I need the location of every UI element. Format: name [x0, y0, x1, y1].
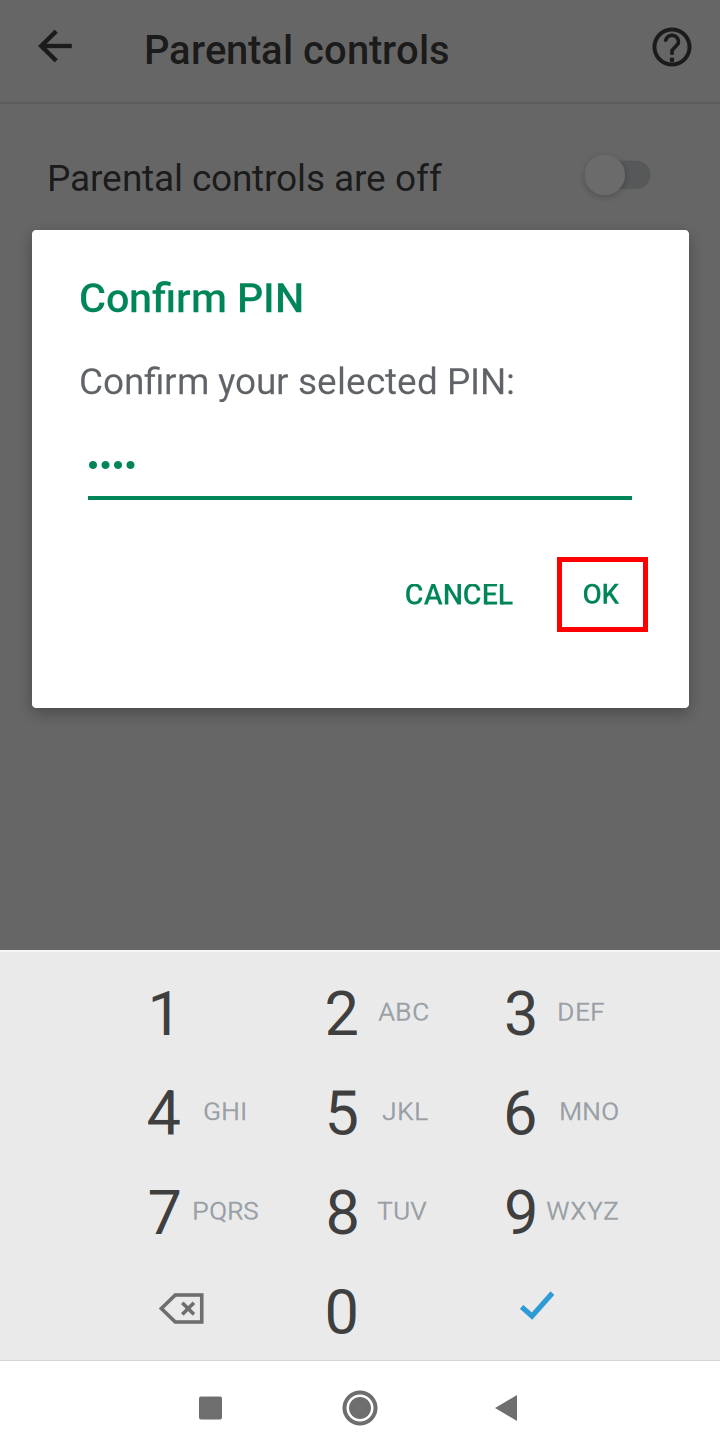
- button[interactable]: 2: [232, 978, 452, 1077]
- staticText: WXYZ: [546, 1195, 619, 1226]
- staticText: PQRS: [192, 1195, 259, 1226]
- button[interactable]: Delete: [109, 1259, 329, 1358]
- button[interactable]: Back: [8, 0, 104, 94]
- button[interactable]: 4: [54, 1077, 274, 1176]
- staticText: Parental controls: [144, 27, 450, 74]
- staticText: Confirm PIN: [79, 274, 304, 322]
- staticText: 7: [147, 1177, 181, 1249]
- button[interactable]: OK: [557, 557, 648, 632]
- staticText: 5: [324, 1077, 358, 1149]
- staticText: GHI: [203, 1095, 247, 1127]
- button[interactable]: 7: [55, 1177, 275, 1276]
- button[interactable]: Recent apps: [140, 1360, 280, 1456]
- staticText: 6: [503, 1077, 537, 1149]
- button[interactable]: 6: [411, 1077, 631, 1176]
- button[interactable]: 9: [411, 1177, 631, 1276]
- staticText: 0: [324, 1276, 358, 1348]
- button[interactable]: Confirm: [427, 1259, 647, 1358]
- button[interactable]: Help: [624, 0, 720, 95]
- staticText: 1: [147, 978, 181, 1050]
- button[interactable]: Back: [436, 1360, 576, 1456]
- button[interactable]: CANCEL: [374, 558, 543, 632]
- button[interactable]: 5: [233, 1077, 453, 1176]
- staticText: TUV: [377, 1195, 427, 1226]
- staticText: 9: [504, 1177, 538, 1249]
- staticText: ABC: [378, 996, 429, 1027]
- button[interactable]: 1: [51, 978, 271, 1077]
- staticText: JKL: [382, 1095, 428, 1127]
- button[interactable]: 8: [233, 1177, 453, 1276]
- button[interactable]: Parental controls switch, off: [0, 104, 720, 230]
- button[interactable]: 0: [232, 1276, 452, 1375]
- staticText: DEF: [557, 996, 605, 1027]
- staticText: CANCEL: [405, 578, 513, 612]
- staticText: Confirm your selected PIN:: [79, 360, 515, 403]
- staticText: 4: [146, 1077, 180, 1149]
- staticText: 3: [504, 978, 538, 1050]
- button[interactable]: 3: [411, 978, 631, 1077]
- staticText: 2: [324, 978, 358, 1050]
- staticText: Parental controls are off: [47, 157, 442, 200]
- staticText: MNO: [559, 1095, 619, 1127]
- button[interactable]: Home: [290, 1360, 430, 1456]
- staticText: OK: [582, 578, 619, 611]
- staticText: 8: [325, 1177, 359, 1249]
